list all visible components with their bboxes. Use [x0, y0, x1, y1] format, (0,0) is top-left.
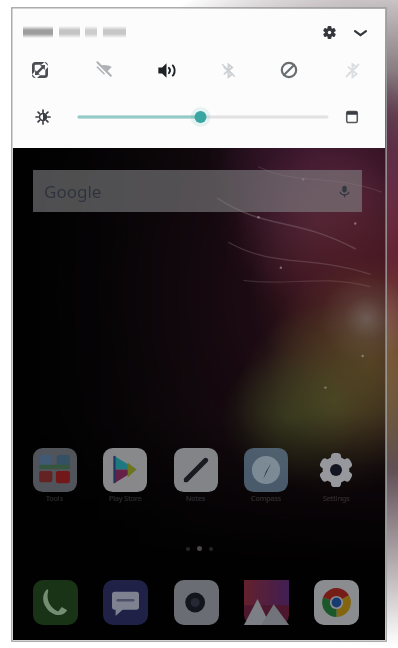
- button[interactable]: Messages: [103, 580, 148, 625]
- staticText: Settings: [323, 494, 350, 504]
- staticText: Tools: [46, 494, 64, 504]
- staticText: Google: [44, 180, 102, 203]
- button[interactable]: Chrome: [314, 580, 359, 625]
- staticText: Play Store: [109, 494, 142, 504]
- button[interactable]: Expand quick settings: [347, 19, 373, 45]
- button[interactable]: Auto rotate: [23, 53, 57, 87]
- button[interactable]: Cast: [335, 53, 369, 87]
- button[interactable]: Voice search: [335, 182, 353, 200]
- button[interactable]: Do not disturb: [272, 53, 306, 87]
- button[interactable]: Camera: [174, 580, 219, 625]
- button[interactable]: Notes: [174, 448, 218, 492]
- button[interactable]: Phone: [33, 580, 78, 625]
- button[interactable]: Compass: [244, 448, 288, 492]
- button[interactable]: Tools: [33, 448, 77, 492]
- button[interactable]: Settings: [314, 448, 358, 492]
- button[interactable]: Gallery: [244, 580, 289, 625]
- staticText: Compass: [251, 494, 282, 504]
- button[interactable]: Settings: [316, 19, 342, 45]
- button[interactable]: Wi-Fi: [87, 53, 121, 87]
- button[interactable]: Play Store: [103, 448, 147, 492]
- button[interactable]: Auto brightness: [341, 106, 363, 128]
- button[interactable]: Brightness slider: [79, 107, 327, 127]
- staticText: Notes: [186, 494, 206, 504]
- button[interactable]: Google: [33, 170, 362, 212]
- button[interactable]: Sound: [149, 53, 183, 87]
- button[interactable]: Bluetooth: [211, 53, 245, 87]
- button[interactable]: Brightness: [31, 105, 55, 129]
